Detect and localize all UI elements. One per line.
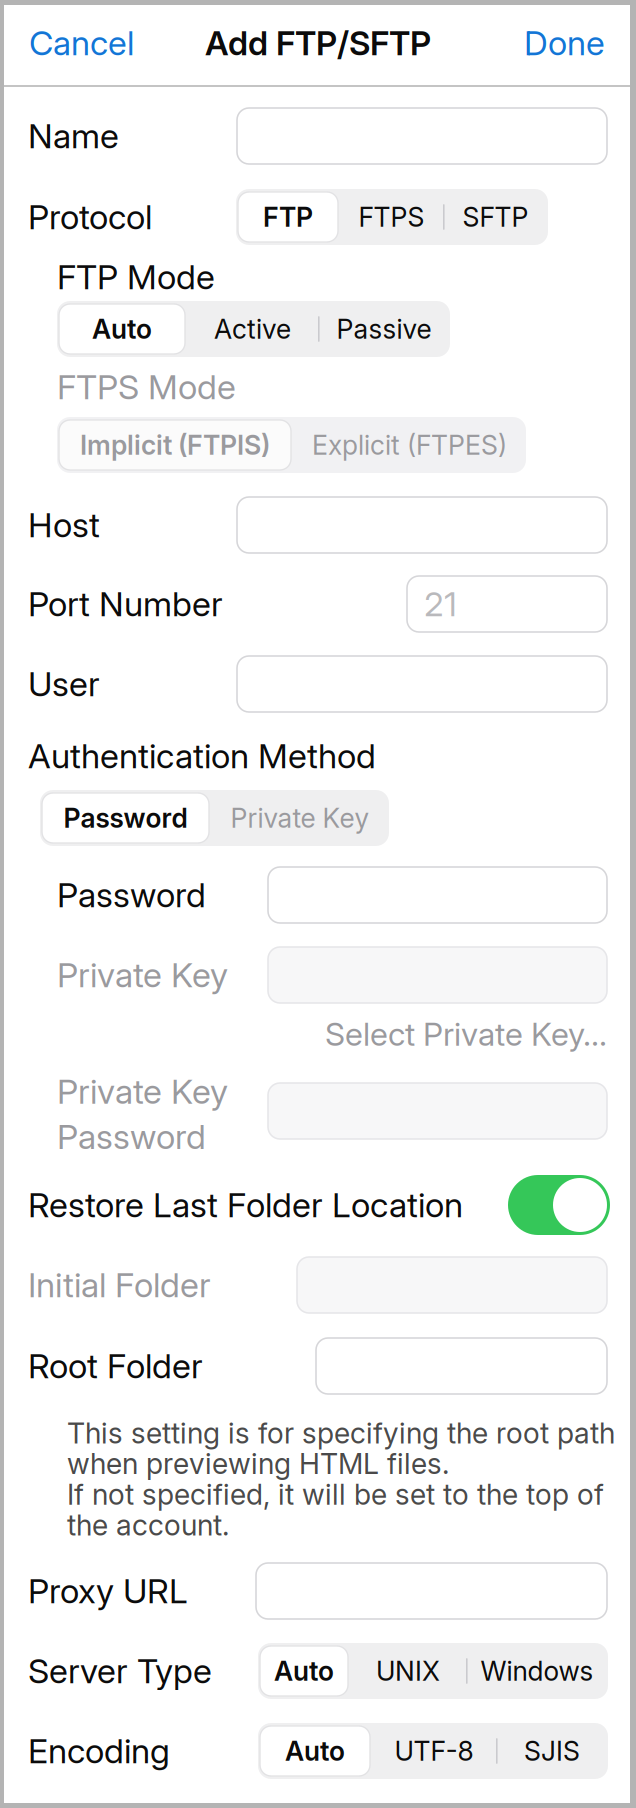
staticText: Server Type xyxy=(28,1650,212,1691)
staticText: Port Number xyxy=(28,583,223,624)
button[interactable]: FTPS xyxy=(340,189,443,245)
button[interactable]: Private Key xyxy=(211,790,389,846)
staticText: Password xyxy=(57,874,206,915)
staticText: Passive xyxy=(336,313,431,345)
staticText: SFTP xyxy=(462,201,528,233)
staticText: Explicit (FTPES) xyxy=(312,429,507,461)
button[interactable]: Cancel xyxy=(0,1,152,85)
staticText: Private Key xyxy=(230,802,369,834)
staticText: Implicit (FTPIS) xyxy=(80,429,270,461)
staticText: Restore Last Folder Location xyxy=(28,1184,463,1225)
staticText: Encoding xyxy=(28,1730,170,1771)
staticText: Select Private Key... xyxy=(325,1015,607,1053)
staticText: 21 xyxy=(424,583,457,624)
button[interactable]: Done xyxy=(506,1,636,85)
button[interactable]: Implicit (FTPIS) xyxy=(57,417,293,473)
button[interactable]: SJIS xyxy=(496,1723,608,1779)
staticText: User xyxy=(28,663,100,704)
button[interactable]: Windows xyxy=(466,1643,608,1699)
staticText: Private Key xyxy=(57,954,228,995)
staticText: Auto xyxy=(285,1735,345,1767)
staticText: FTPS xyxy=(358,201,424,233)
staticText: Root Folder xyxy=(28,1345,203,1386)
button[interactable]: Auto xyxy=(57,301,187,357)
staticText: Name xyxy=(28,115,119,156)
button[interactable]: UTF-8 xyxy=(372,1723,496,1779)
staticText: FTP xyxy=(263,201,313,233)
staticText: Password xyxy=(57,1116,206,1157)
button[interactable]: Active xyxy=(187,301,318,357)
staticText: Windows xyxy=(480,1655,593,1687)
staticText: Initial Folder xyxy=(28,1264,211,1305)
staticText: Auto xyxy=(92,313,152,345)
button[interactable]: FTP xyxy=(236,189,340,245)
staticText: when previewing HTML files. xyxy=(67,1446,449,1481)
button[interactable]: Explicit (FTPES) xyxy=(293,417,526,473)
staticText: FTPS Mode xyxy=(57,366,236,407)
staticText: UTF-8 xyxy=(394,1735,473,1767)
staticText: the account. xyxy=(67,1508,229,1542)
staticText: Cancel xyxy=(29,23,134,63)
button[interactable]: Passive xyxy=(318,301,450,357)
staticText: SJIS xyxy=(524,1735,580,1767)
button[interactable]: Auto xyxy=(258,1723,372,1779)
button[interactable]: Password xyxy=(40,790,211,846)
staticText: Password xyxy=(63,802,187,834)
staticText: Protocol xyxy=(28,196,152,237)
staticText: UNIX xyxy=(376,1655,440,1687)
button[interactable]: SFTP xyxy=(443,189,548,245)
staticText: If not specified, it will be set to the … xyxy=(67,1477,604,1512)
staticText: Authentication Method xyxy=(28,735,376,776)
staticText: Proxy URL xyxy=(28,1570,188,1611)
staticText: This setting is for specifying the root … xyxy=(67,1416,615,1450)
button[interactable]: Select Private Key... xyxy=(325,1009,636,1059)
button[interactable]: Restore Last Folder Location xyxy=(508,1175,610,1235)
staticText: Private Key xyxy=(57,1071,228,1112)
button[interactable]: UNIX xyxy=(350,1643,466,1699)
button[interactable]: Auto xyxy=(258,1643,350,1699)
staticText: Auto xyxy=(274,1655,334,1687)
staticText: Host xyxy=(28,504,100,545)
staticText: Done xyxy=(524,23,605,63)
staticText: Add FTP/SFTP xyxy=(205,23,431,63)
staticText: Active xyxy=(214,313,291,345)
staticText: FTP Mode xyxy=(57,256,215,297)
